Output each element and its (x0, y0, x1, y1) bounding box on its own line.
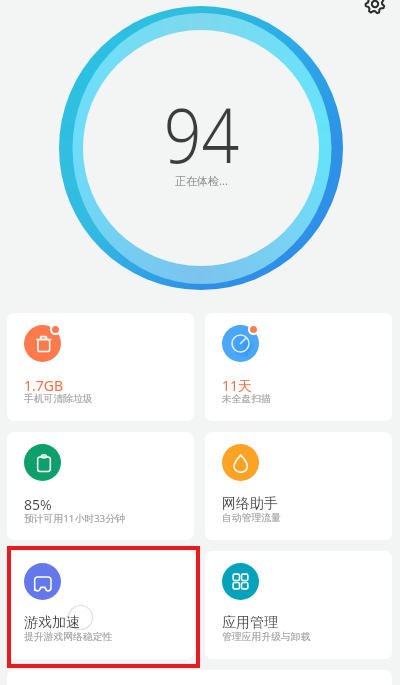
staticText: 管理应用升级与卸载 (222, 631, 311, 643)
staticText: 正在体检... (175, 173, 228, 188)
button[interactable]: 游戏加速 (7, 551, 194, 659)
button[interactable]: 应用管理 (205, 551, 392, 659)
staticText: 自动管理流量 (222, 512, 281, 524)
button[interactable]: 网络助手 (205, 432, 392, 540)
staticText: 应用管理 (222, 614, 278, 632)
staticText: 网络助手 (222, 495, 278, 513)
button[interactable]: 11天 (205, 313, 392, 421)
staticText: 1.7GB (24, 376, 64, 395)
staticText: 提升游戏网络稳定性 (24, 631, 113, 643)
staticText: 85% (24, 495, 52, 514)
staticText: 预计可用11小时33分钟 (24, 512, 125, 525)
staticText: 游戏加速 (24, 614, 80, 632)
staticText: 手机可清除垃圾 (24, 393, 93, 405)
staticText: 未全盘扫描 (222, 393, 271, 405)
staticText: 11天 (222, 376, 253, 395)
staticText: 94 (164, 82, 239, 186)
button[interactable]: Settings (361, 0, 388, 17)
button[interactable]: 1.7GB (7, 313, 194, 421)
button[interactable]: 85% (7, 432, 194, 540)
